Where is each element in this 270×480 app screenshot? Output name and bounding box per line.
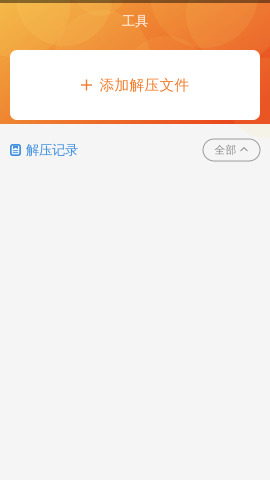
- staticText: 添加解压文件: [99, 76, 189, 94]
- button[interactable]: 解压记录: [10, 139, 78, 161]
- staticText: 解压记录: [26, 142, 78, 158]
- staticText: 全部: [214, 143, 236, 156]
- button[interactable]: 添加解压文件: [10, 50, 260, 120]
- staticText: 工具: [122, 13, 148, 29]
- button[interactable]: 全部: [203, 139, 260, 161]
